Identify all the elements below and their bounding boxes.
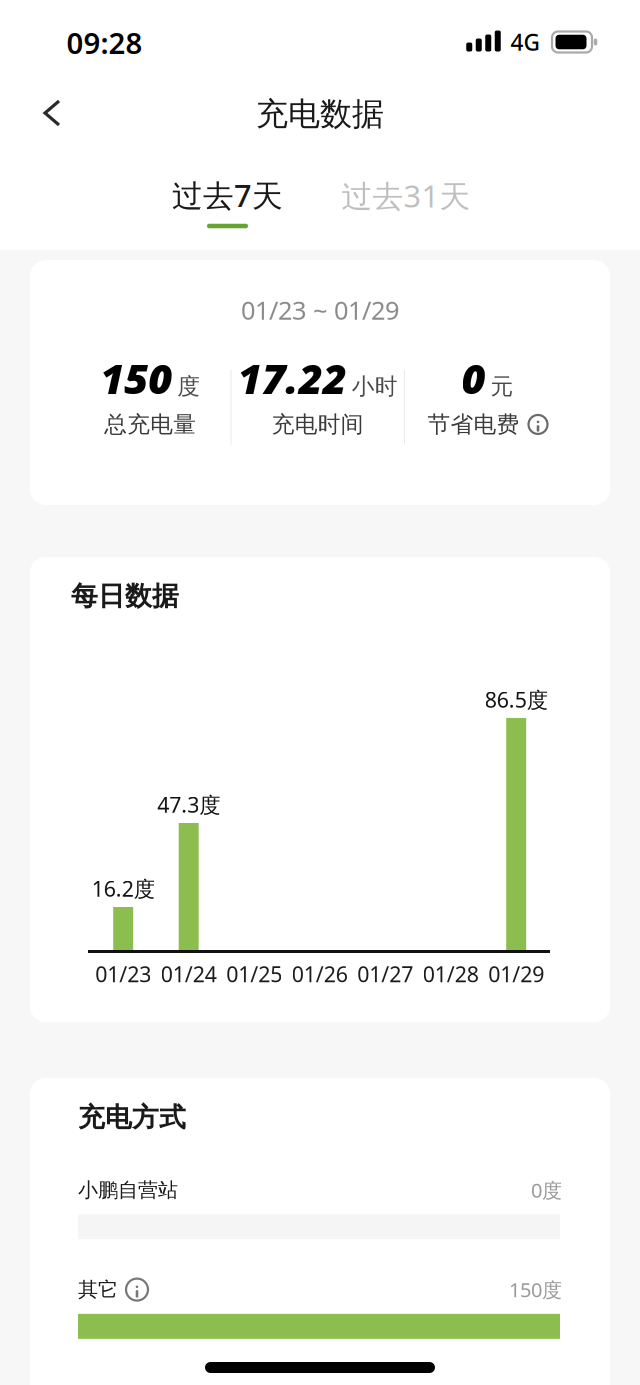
- staticText: 元: [490, 373, 513, 400]
- staticText: 其它: [78, 1277, 118, 1302]
- staticText: 01/24: [161, 960, 217, 988]
- button[interactable]: Back: [27, 85, 78, 141]
- staticText: 86.5度: [485, 685, 548, 714]
- button[interactable]: 过去31天: [331, 167, 480, 224]
- staticText: 小时: [352, 373, 398, 400]
- staticText: 01/29: [488, 960, 544, 988]
- staticText: 充电方式: [78, 1101, 186, 1134]
- staticText: 充电数据: [256, 94, 384, 134]
- button[interactable]: 其它充电说明: [126, 1279, 148, 1301]
- staticText: 总充电量: [104, 410, 196, 438]
- staticText: 09:28: [66, 23, 142, 62]
- staticText: 4G: [510, 27, 539, 57]
- staticText: 每日数据: [71, 580, 179, 612]
- staticText: 小鹏自营站: [78, 1178, 178, 1202]
- staticText: 0: [461, 351, 485, 405]
- staticText: 度: [177, 373, 200, 400]
- staticText: 0度: [531, 1177, 562, 1203]
- staticText: 01/27: [357, 960, 413, 988]
- staticText: 充电时间: [272, 410, 364, 438]
- staticText: 150: [100, 351, 172, 405]
- staticText: 16.2度: [92, 874, 155, 903]
- staticText: 17.22: [238, 351, 347, 405]
- staticText: 150度: [509, 1276, 562, 1303]
- staticText: 过去31天: [341, 175, 470, 216]
- staticText: 过去7天: [172, 175, 283, 215]
- staticText: 01/26: [292, 960, 348, 988]
- button[interactable]: 过去7天: [162, 167, 293, 223]
- staticText: 47.3度: [157, 790, 220, 819]
- button[interactable]: 节省电费说明: [528, 415, 547, 434]
- staticText: 01/23 ~ 01/29: [241, 293, 399, 327]
- staticText: 01/25: [226, 960, 282, 988]
- staticText: 01/23: [95, 960, 151, 988]
- staticText: 01/28: [423, 960, 479, 988]
- staticText: 节省电费: [427, 410, 519, 438]
